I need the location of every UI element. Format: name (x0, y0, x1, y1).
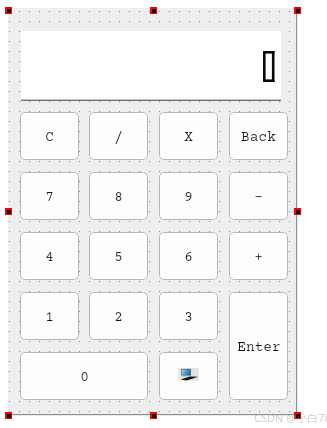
button[interactable]: 0 (20, 352, 148, 400)
button[interactable]: Display (21, 31, 281, 101)
staticText: 9 (184, 190, 193, 206)
staticText: 4 (45, 250, 54, 266)
button[interactable]: 2 (89, 292, 148, 340)
staticText: Enter (237, 340, 281, 356)
staticText: 3 (184, 310, 193, 326)
button[interactable]: 7 (20, 172, 79, 220)
staticText: 0 (80, 370, 89, 386)
button[interactable]: 5 (89, 232, 148, 280)
staticText: X (184, 130, 193, 146)
staticText: CSDN @小白78 (254, 410, 327, 425)
button[interactable]: / (89, 112, 148, 160)
button[interactable]: Computer (159, 352, 218, 400)
button[interactable]: - (229, 172, 288, 220)
button[interactable]: + (229, 232, 288, 280)
button[interactable]: 8 (89, 172, 148, 220)
button[interactable]: 6 (159, 232, 218, 280)
button[interactable]: 3 (159, 292, 218, 340)
staticText: - (254, 190, 263, 206)
staticText: / (114, 130, 123, 146)
staticText: Back (241, 130, 276, 146)
button[interactable]: 9 (159, 172, 218, 220)
button[interactable]: Enter (229, 292, 288, 400)
staticText: 8 (114, 190, 123, 206)
button[interactable]: 1 (20, 292, 79, 340)
staticText: 5 (114, 250, 123, 266)
staticText: C (45, 130, 54, 146)
staticText: 7 (45, 190, 54, 206)
staticText: 2 (114, 310, 123, 326)
button[interactable]: C (20, 112, 79, 160)
staticText: 6 (184, 250, 193, 266)
button[interactable]: 4 (20, 232, 79, 280)
button[interactable]: X (159, 112, 218, 160)
staticText: 1 (45, 310, 54, 326)
staticText: + (254, 250, 263, 266)
button[interactable]: Back (229, 112, 288, 160)
